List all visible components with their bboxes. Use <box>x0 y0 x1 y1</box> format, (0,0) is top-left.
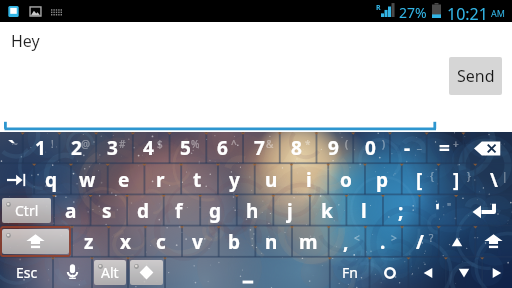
button[interactable]: x <box>107 226 143 257</box>
button[interactable]: Enter <box>456 195 512 226</box>
staticText: = <box>439 135 450 161</box>
staticText: AM <box>491 7 505 19</box>
button[interactable]: l <box>345 195 382 226</box>
staticText: Hey <box>11 30 40 52</box>
staticText: 0 <box>365 135 376 161</box>
staticText: k <box>321 198 333 224</box>
button[interactable]: 3 <box>94 132 130 164</box>
button[interactable]: 9 <box>315 132 352 164</box>
button[interactable]: = <box>426 132 463 164</box>
staticText: g <box>209 198 222 224</box>
staticText: + <box>453 137 459 151</box>
button[interactable]: p <box>364 164 401 195</box>
button[interactable]: Down <box>446 257 482 288</box>
button[interactable]: k <box>308 195 345 226</box>
staticText: 8 <box>291 135 302 161</box>
button[interactable]: Menu <box>370 257 409 288</box>
button[interactable]: Fn <box>330 257 370 288</box>
staticText: w <box>79 167 96 193</box>
staticText: Esc <box>16 263 38 282</box>
button[interactable]: 6 <box>204 132 241 164</box>
staticText: R <box>376 3 381 13</box>
button[interactable]: d <box>125 195 161 226</box>
staticText: - <box>404 135 411 161</box>
button[interactable]: w <box>69 164 105 195</box>
button[interactable]: n <box>253 226 290 257</box>
button[interactable]: j <box>271 195 308 226</box>
button[interactable]: Alt <box>92 257 128 288</box>
staticText: d <box>137 198 150 224</box>
button[interactable]: 1 <box>22 132 58 164</box>
button[interactable]: Ctrl <box>0 195 53 226</box>
staticText: 5 <box>180 135 191 161</box>
button[interactable]: Esc <box>0 257 53 288</box>
button[interactable]: ' <box>419 195 456 226</box>
staticText: ' <box>435 198 441 224</box>
button[interactable]: Up <box>438 226 475 257</box>
button[interactable]: z <box>71 226 107 257</box>
staticText: @ <box>81 137 90 151</box>
staticText: 7 <box>254 135 265 161</box>
button[interactable]: Send <box>449 57 502 95</box>
button[interactable]: . <box>364 226 401 257</box>
button[interactable]: 4 <box>130 132 167 164</box>
button[interactable]: Shift <box>0 226 71 257</box>
staticText: [ <box>416 167 423 193</box>
button[interactable]: Shift <box>475 226 512 257</box>
button[interactable]: a <box>53 195 89 226</box>
staticText: / <box>416 229 424 255</box>
button[interactable]: ; <box>382 195 419 226</box>
button[interactable]: h <box>234 195 271 226</box>
button[interactable]: Voice input <box>53 257 92 288</box>
button[interactable]: 0 <box>352 132 389 164</box>
button[interactable]: m <box>290 226 327 257</box>
button[interactable]: , <box>327 226 364 257</box>
button[interactable]: 5 <box>167 132 204 164</box>
button[interactable]: / <box>401 226 438 257</box>
button[interactable]: - <box>389 132 426 164</box>
button[interactable]: 2 <box>58 132 94 164</box>
staticText: o <box>340 167 352 193</box>
staticText: ? <box>429 231 434 245</box>
button[interactable]: Keyboard settings <box>128 257 165 288</box>
button[interactable]: y <box>216 164 253 195</box>
staticText: _ <box>417 137 422 151</box>
button[interactable]: t <box>179 164 216 195</box>
button[interactable]: i <box>290 164 327 195</box>
button[interactable]: Tab <box>0 164 33 195</box>
button[interactable]: 7 <box>241 132 278 164</box>
button[interactable]: o <box>327 164 364 195</box>
staticText: * <box>305 137 311 151</box>
button[interactable]: u <box>253 164 290 195</box>
button[interactable]: s <box>89 195 125 226</box>
button[interactable]: b <box>216 226 253 257</box>
staticText: \ <box>490 167 498 193</box>
button[interactable]: Left <box>409 257 446 288</box>
button[interactable]: [ <box>401 164 438 195</box>
button[interactable]: g <box>197 195 234 226</box>
staticText: , <box>343 229 349 255</box>
button[interactable]: Space <box>165 257 330 288</box>
staticText: e <box>118 167 130 193</box>
staticText: s <box>102 198 112 224</box>
staticText: : <box>412 200 415 214</box>
button[interactable]: f <box>161 195 197 226</box>
button[interactable]: ] <box>438 164 475 195</box>
staticText: u <box>265 167 278 193</box>
button[interactable]: r <box>142 164 179 195</box>
staticText: & <box>266 137 274 151</box>
staticText: 1 <box>35 135 46 161</box>
button[interactable]: v <box>179 226 216 257</box>
button[interactable]: q <box>33 164 69 195</box>
button[interactable]: 8 <box>278 132 315 164</box>
button[interactable]: ` <box>0 132 22 164</box>
staticText: 4 <box>143 135 154 161</box>
button[interactable]: Right <box>482 257 512 288</box>
button[interactable]: \ <box>475 164 512 195</box>
button[interactable]: c <box>143 226 179 257</box>
button[interactable]: e <box>105 164 142 195</box>
staticText: b <box>228 229 241 255</box>
staticText: Fn <box>342 263 358 282</box>
button[interactable]: Backspace <box>463 132 512 164</box>
staticText: h <box>246 198 259 224</box>
